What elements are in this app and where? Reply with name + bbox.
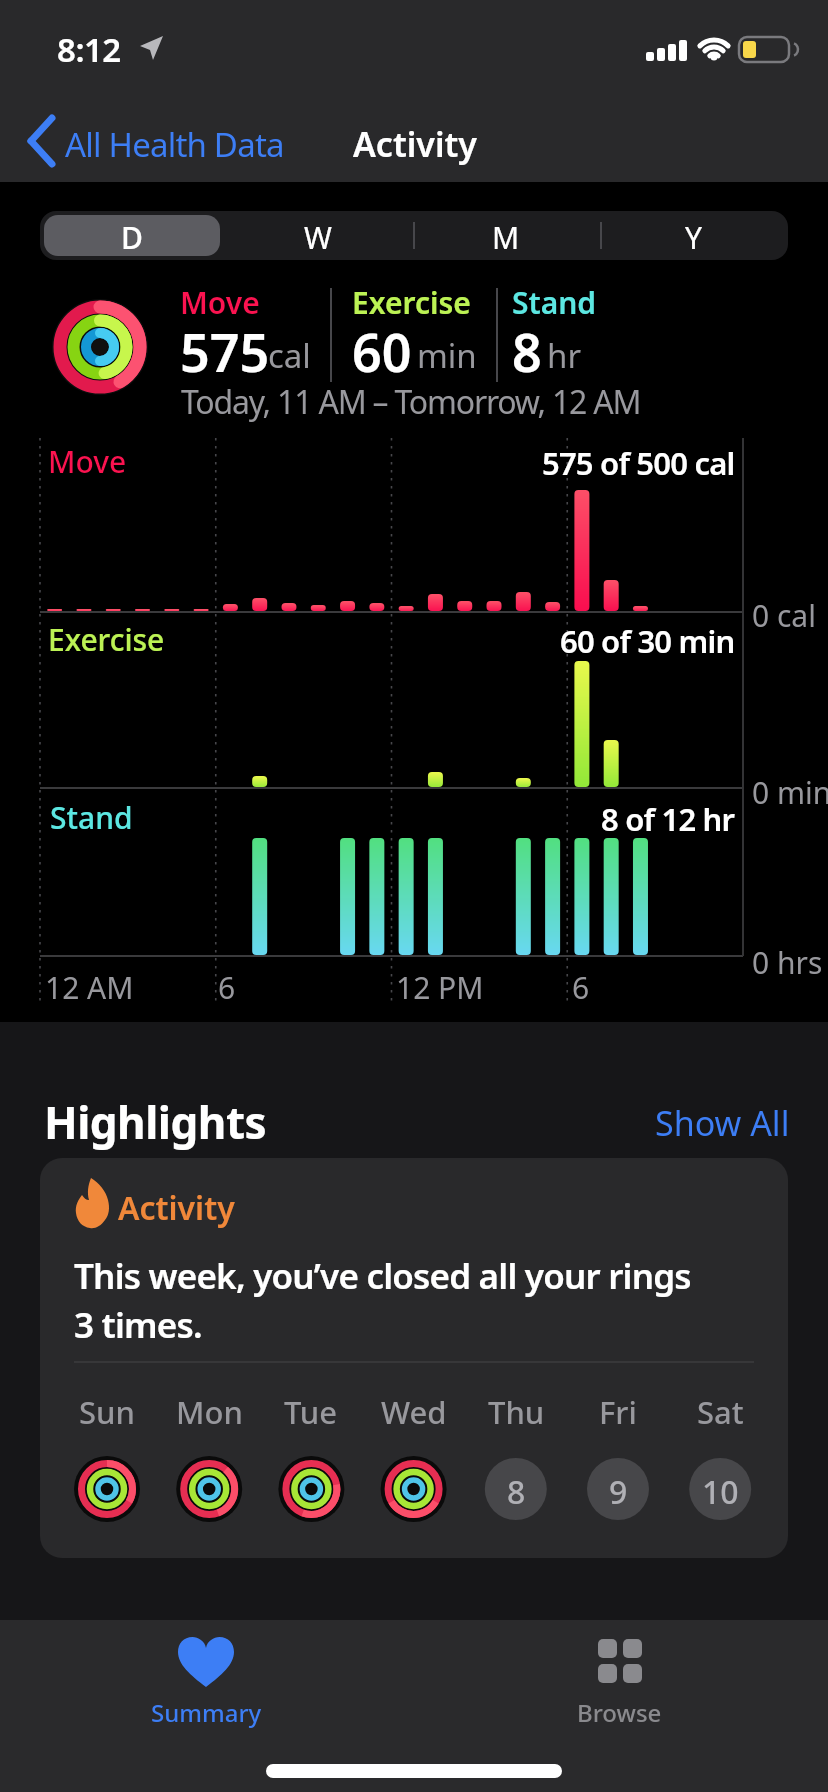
button[interactable] — [40, 1158, 788, 1558]
staticText: Move — [180, 282, 260, 323]
staticText: 575 — [180, 316, 270, 387]
staticText: D — [121, 217, 143, 258]
staticText: 10 — [702, 1470, 739, 1514]
staticText: 8 of 12 hr — [601, 798, 735, 840]
staticText: 6 — [218, 967, 236, 1008]
staticText: 8 — [507, 1470, 526, 1514]
staticText: 3 times. — [74, 1301, 202, 1349]
staticText: 60 — [352, 316, 412, 387]
staticText: 8 — [512, 316, 542, 387]
staticText: Wed — [381, 1391, 447, 1433]
staticText: Activity — [353, 121, 477, 167]
staticText: W — [304, 217, 332, 258]
staticText: Summary — [151, 1696, 262, 1729]
staticText: Exercise — [48, 619, 165, 660]
staticText: Stand — [50, 797, 133, 838]
staticText: min — [417, 333, 477, 378]
staticText: 9 — [609, 1470, 628, 1514]
staticText: Fri — [599, 1391, 637, 1433]
staticText: Sat — [697, 1391, 744, 1433]
staticText: 0 hrs — [752, 942, 823, 983]
staticText: Browse — [577, 1696, 662, 1729]
staticText: 0 cal — [752, 595, 816, 636]
staticText: Thu — [488, 1391, 545, 1433]
staticText: Tue — [284, 1391, 338, 1433]
staticText: Highlights — [44, 1092, 267, 1152]
staticText: Activity — [118, 1186, 235, 1230]
staticText: Exercise — [352, 282, 471, 323]
staticText: Today, 11 AM – Tomorrow, 12 AM — [181, 380, 641, 424]
staticText: 0 min — [752, 772, 828, 813]
staticText: 12 PM — [396, 967, 484, 1008]
button[interactable] — [601, 211, 788, 260]
staticText: Y — [685, 217, 702, 258]
button[interactable] — [533, 1624, 705, 1734]
staticText: 6 — [572, 967, 590, 1008]
staticText: 12 AM — [45, 967, 134, 1008]
staticText: 60 of 30 min — [560, 620, 735, 662]
staticText: Show All — [655, 1100, 790, 1146]
staticText: 8:12 — [57, 27, 121, 72]
button[interactable] — [227, 211, 414, 260]
staticText: Sun — [79, 1391, 135, 1433]
button[interactable] — [120, 1624, 292, 1734]
staticText: cal — [268, 333, 311, 378]
staticText: Stand — [512, 282, 597, 323]
staticText: M — [492, 217, 520, 258]
staticText: hr — [547, 333, 582, 378]
staticText: This week, you’ve closed all your rings — [74, 1252, 691, 1300]
button[interactable] — [414, 211, 601, 260]
staticText: 575 of 500 cal — [542, 442, 735, 484]
staticText: Mon — [176, 1391, 243, 1433]
button[interactable]: Show All — [630, 1095, 800, 1145]
staticText: All Health Data — [65, 122, 284, 167]
staticText: Move — [48, 441, 127, 482]
button[interactable]: All Health Data — [20, 112, 300, 172]
button[interactable] — [44, 215, 220, 256]
